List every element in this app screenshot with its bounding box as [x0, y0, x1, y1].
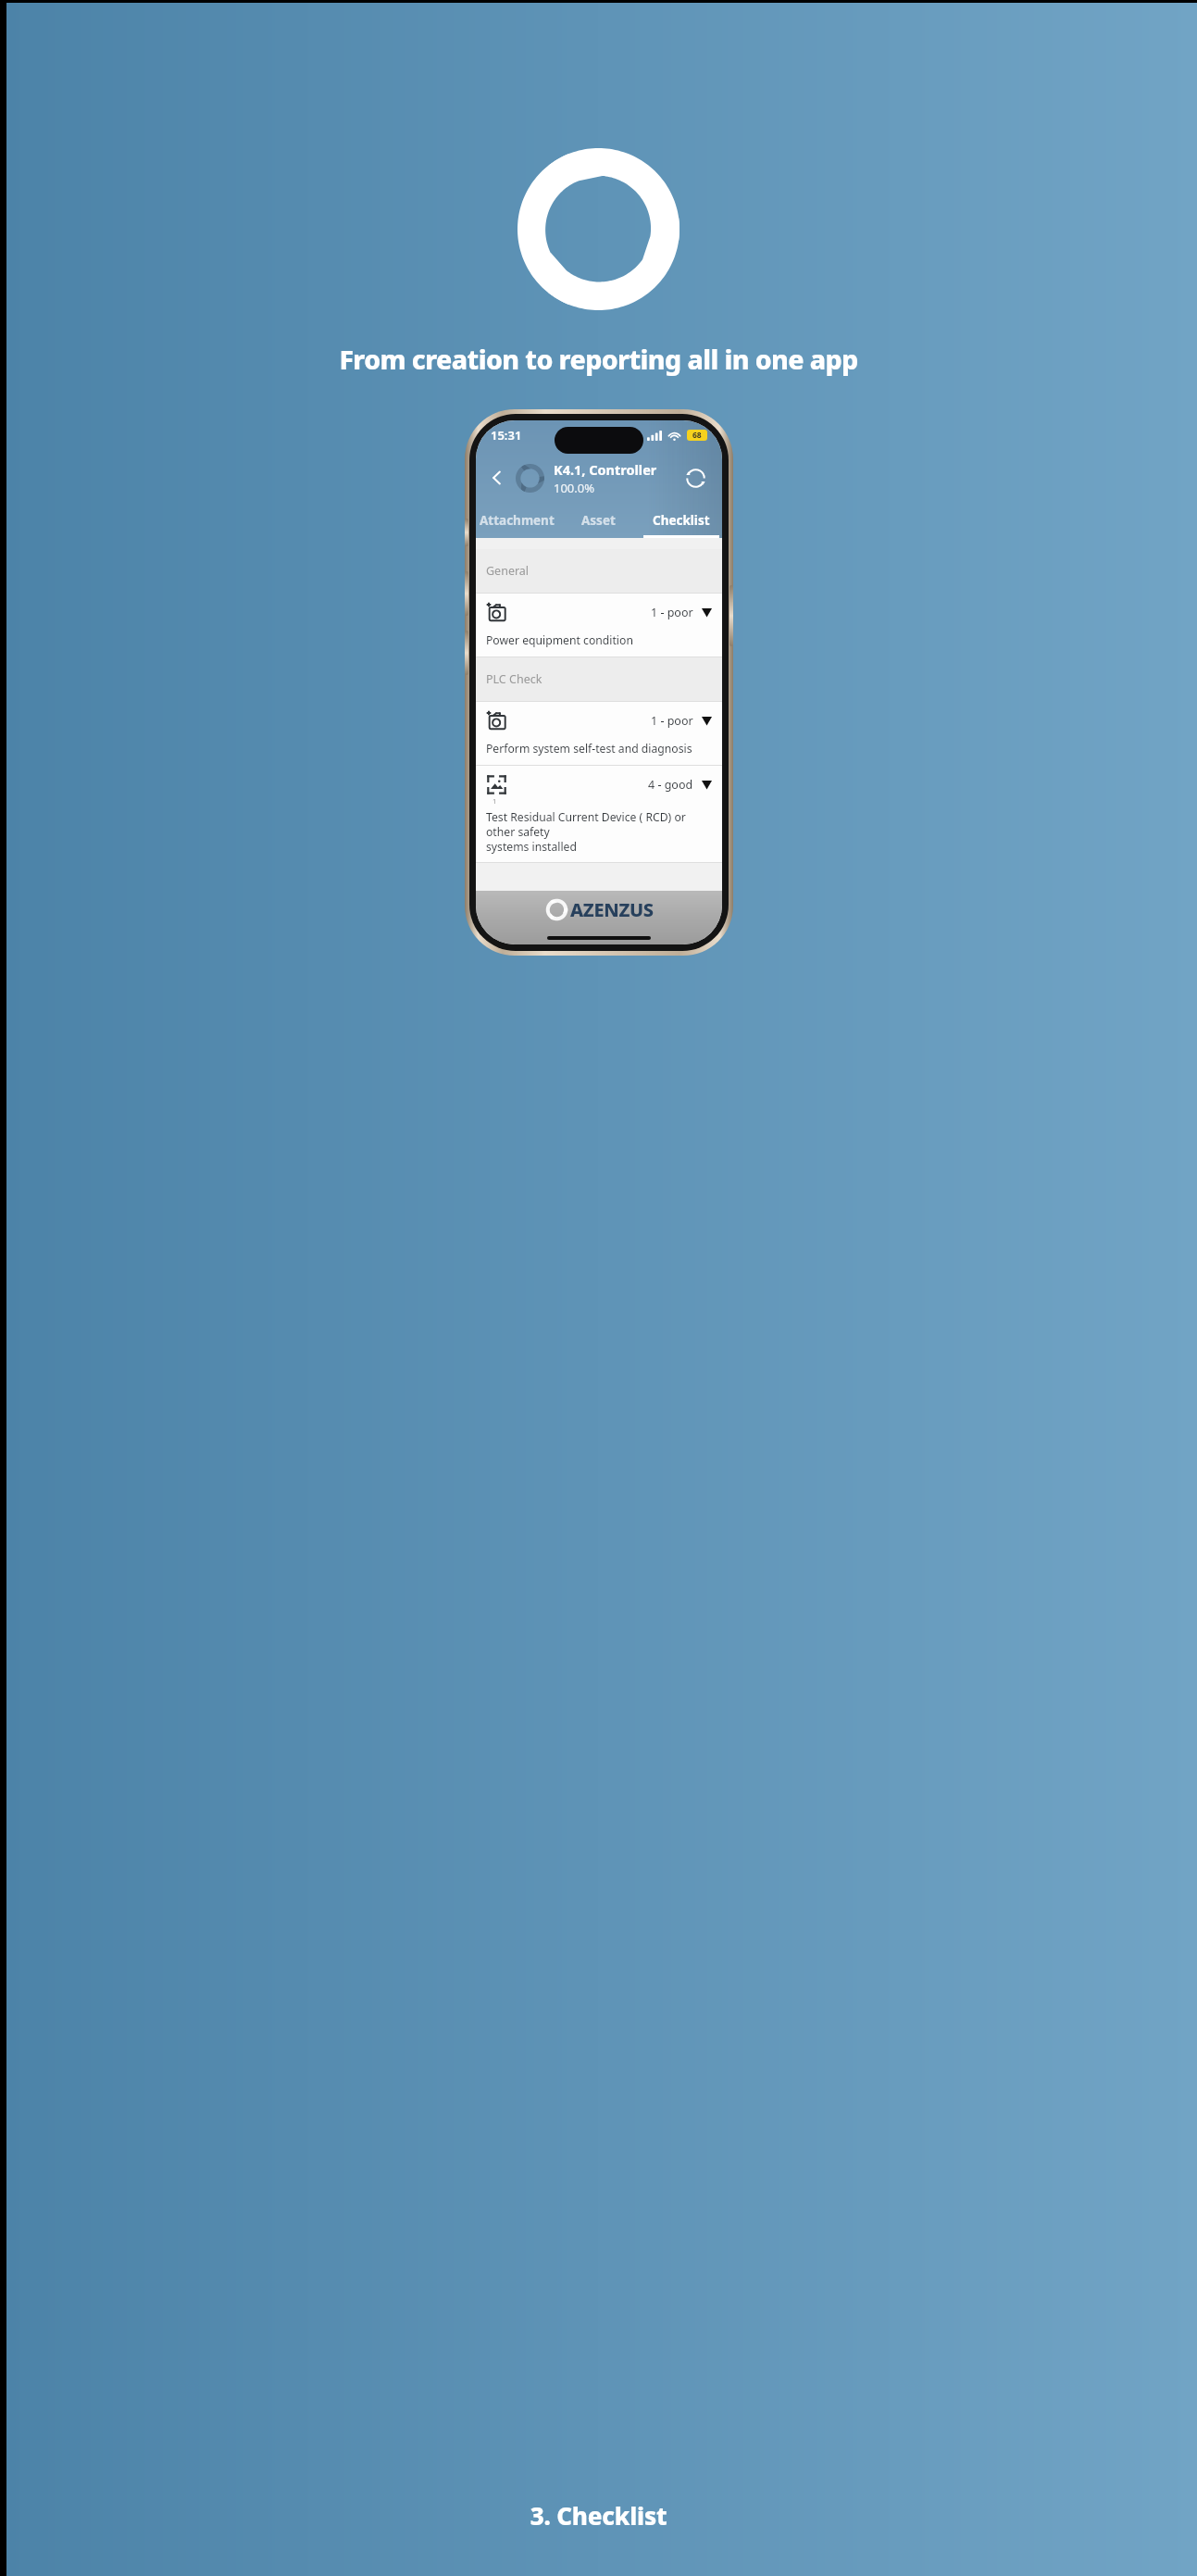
- staticText: 4 - good: [648, 777, 693, 793]
- staticText: Attachment: [480, 512, 555, 529]
- button[interactable]: Checklist: [640, 503, 722, 538]
- staticText: 68: [692, 430, 702, 441]
- button[interactable]: General: [476, 549, 722, 593]
- staticText: 1: [493, 796, 497, 806]
- other: Change rating: [702, 607, 712, 618]
- staticText: 1 - poor: [651, 713, 693, 729]
- button[interactable]: Add photo: [476, 594, 722, 657]
- staticText: Asset: [581, 512, 616, 529]
- other: Add photo: [486, 602, 507, 623]
- staticText: PLC Check: [486, 671, 542, 687]
- button[interactable]: PLC Check: [476, 657, 722, 701]
- button[interactable]: Back: [483, 464, 511, 492]
- staticText: From creation to reporting all in one ap…: [19, 342, 1178, 378]
- other: Change rating: [702, 716, 712, 726]
- other: Photo attached: [486, 774, 507, 795]
- staticText: Test Residual Current Device ( RCD) or o…: [486, 809, 712, 854]
- staticText: Perform system self-test and diagnosis: [486, 741, 692, 757]
- staticText: 3. Checklist: [0, 2499, 1197, 2532]
- other: Change rating: [702, 780, 712, 790]
- staticText: AZENZUS: [570, 897, 654, 922]
- staticText: Power equipment condition: [486, 632, 633, 648]
- button[interactable]: Photo attached: [476, 766, 722, 862]
- button[interactable]: Sync: [680, 462, 711, 494]
- staticText: 15:31: [491, 427, 522, 444]
- staticText: 1 - poor: [651, 605, 693, 620]
- button[interactable]: Attachment: [476, 503, 557, 538]
- button[interactable]: Add photo: [476, 702, 722, 765]
- other: Add photo: [486, 710, 507, 732]
- button[interactable]: AZENZUS: [545, 897, 654, 922]
- staticText: K4.1, Controller: [554, 460, 657, 479]
- staticText: Checklist: [653, 512, 710, 529]
- staticText: 100.0%: [554, 480, 595, 496]
- button[interactable]: Asset: [557, 503, 640, 538]
- staticText: General: [486, 563, 530, 579]
